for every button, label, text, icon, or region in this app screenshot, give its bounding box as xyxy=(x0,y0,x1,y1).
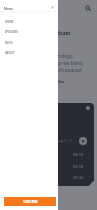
button[interactable]: Previous xyxy=(58,138,64,144)
staticText: EP 14 xyxy=(64,139,73,143)
staticText: 08:58 xyxy=(73,164,84,169)
staticText: Menu xyxy=(4,7,13,11)
staticText: design and us as we blend xyxy=(27,60,83,66)
button[interactable]: Search xyxy=(82,2,93,13)
staticText: Latest episodes xyxy=(33,79,65,84)
button[interactable]: EPISODES xyxy=(0,27,58,37)
button[interactable]: 08:34 xyxy=(25,172,94,182)
button[interactable]: BLOG xyxy=(0,38,58,48)
staticText: BLOG xyxy=(5,41,13,45)
button[interactable]: 08:58 xyxy=(25,161,94,171)
staticText: A weekly show about technology, xyxy=(3,53,74,59)
button[interactable]: HOME xyxy=(0,17,58,27)
button[interactable]: ABOUT xyxy=(0,48,58,58)
staticText: HOME xyxy=(5,20,14,24)
staticText: 08:34 xyxy=(73,175,84,180)
button[interactable]: Play xyxy=(79,137,87,145)
button[interactable]: Close menu xyxy=(47,2,58,13)
staticText: SUBSCRIBE xyxy=(23,200,38,204)
staticText: 08:58 xyxy=(73,152,84,157)
staticText: deep dives with a unique tech podcast xyxy=(1,67,82,73)
button[interactable]: Options xyxy=(86,106,90,110)
staticText: ABOUT xyxy=(5,51,15,55)
staticText: The new podcast xyxy=(28,30,71,37)
staticText: EPISODES xyxy=(5,30,19,34)
button[interactable]: SUBSCRIBE xyxy=(4,197,56,206)
button[interactable]: 08:58 xyxy=(25,149,94,159)
